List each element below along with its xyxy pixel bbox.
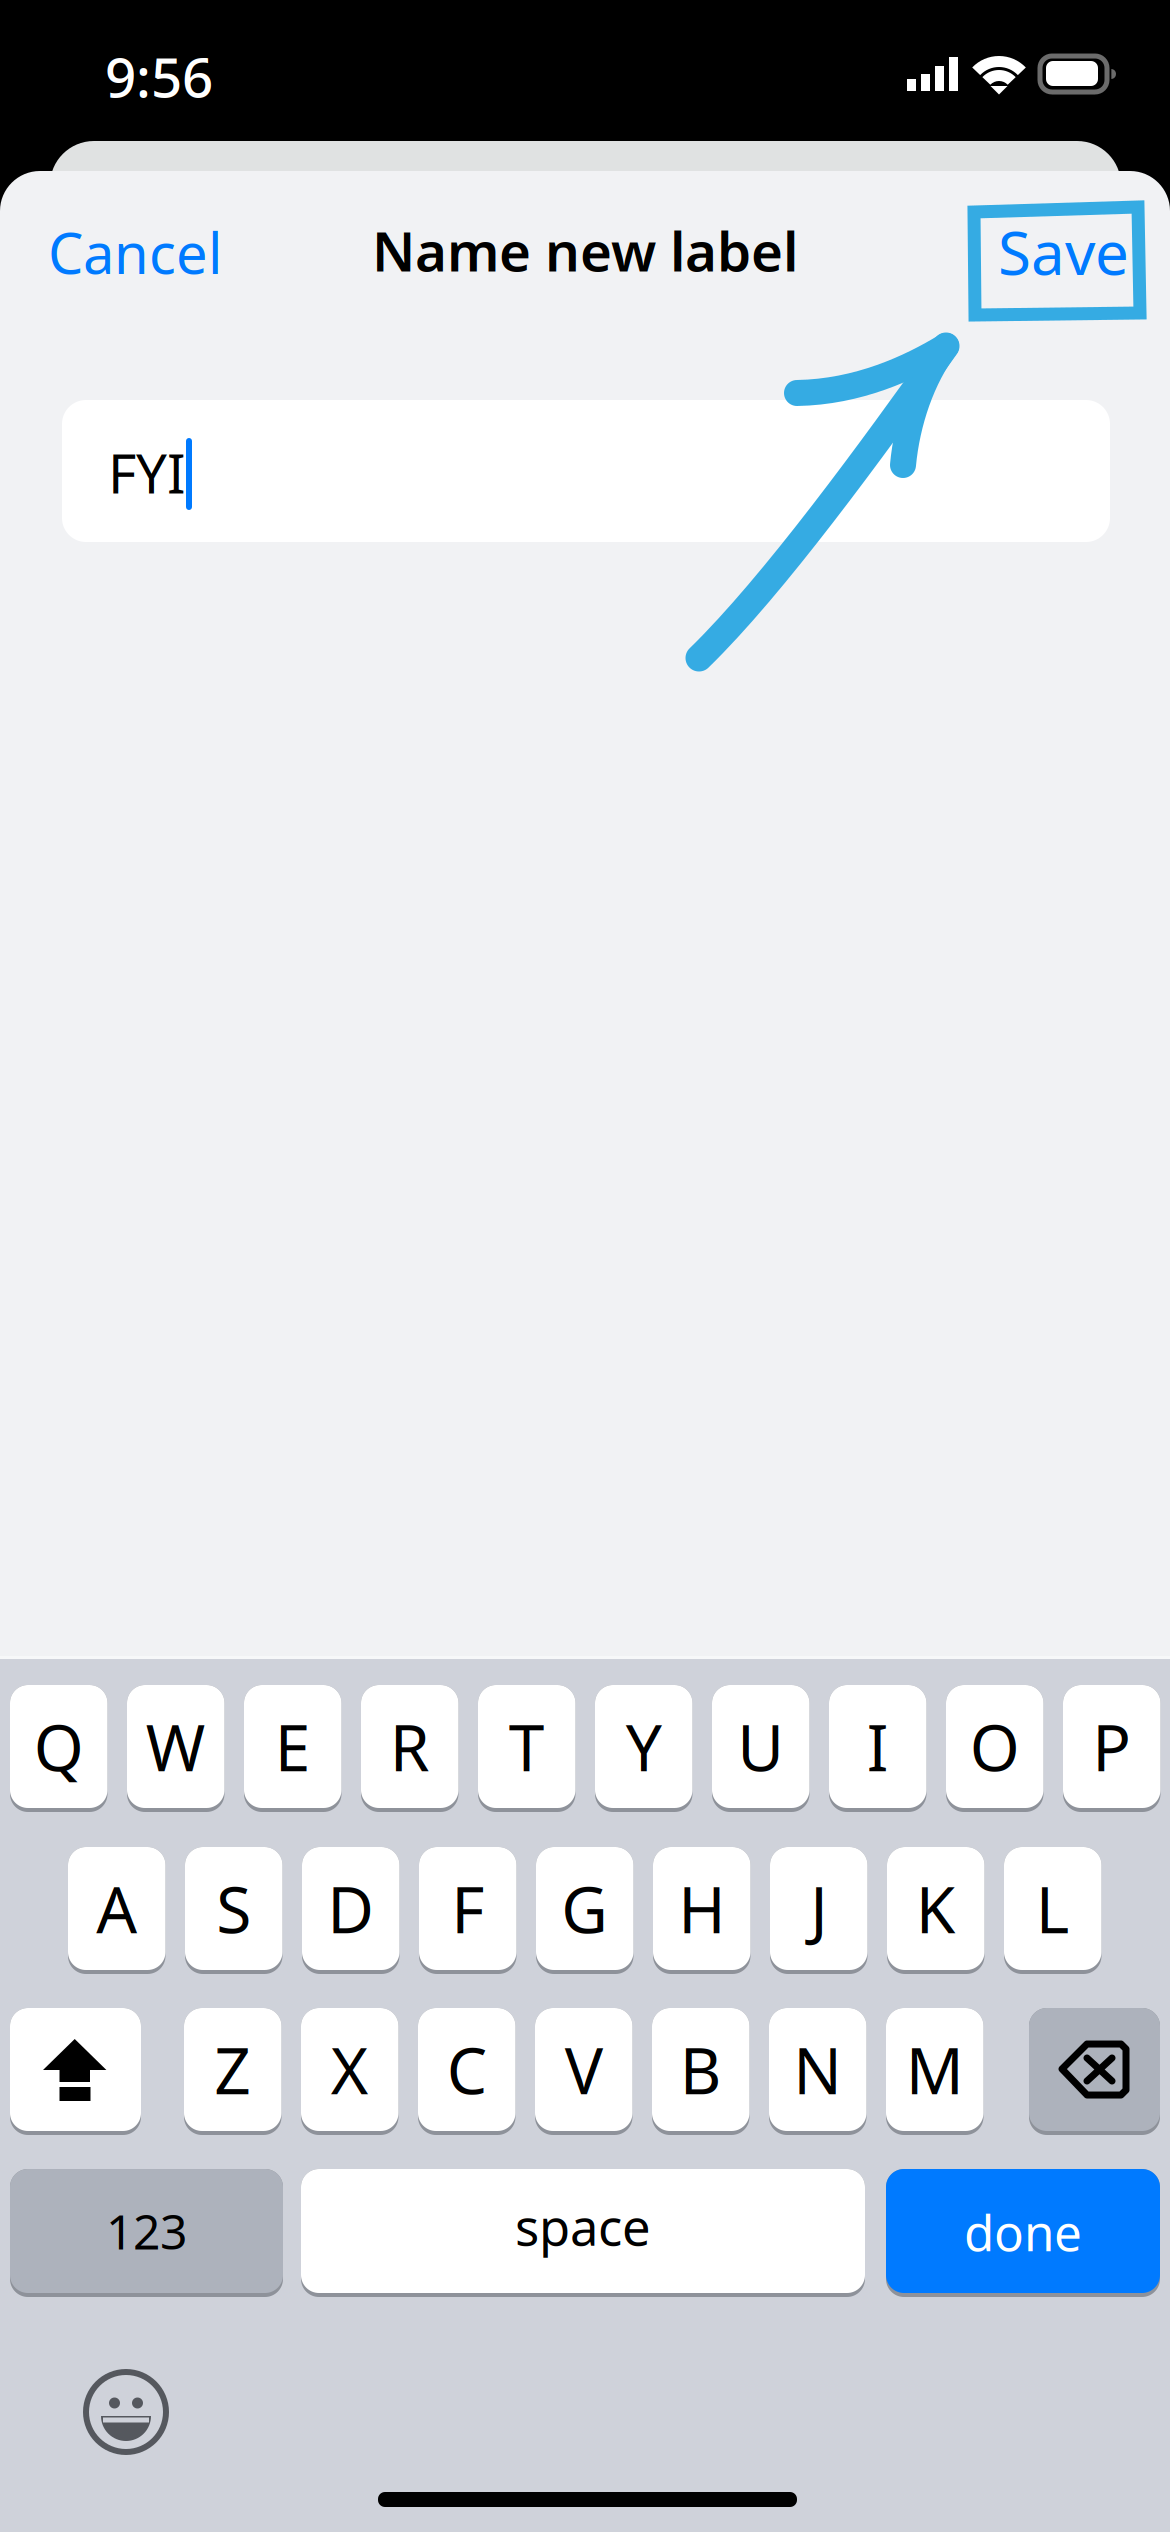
staticText: X	[331, 2027, 369, 2112]
staticText: T	[509, 1704, 545, 1789]
button[interactable]: E	[244, 1683, 341, 1810]
button[interactable]: F	[419, 1845, 516, 1972]
button[interactable]: W	[127, 1683, 224, 1810]
staticText: Save	[998, 212, 1129, 292]
staticText: 9:56	[105, 40, 213, 113]
button[interactable]: Q	[10, 1683, 107, 1810]
staticText: Y	[626, 1704, 662, 1789]
button[interactable]: S	[185, 1845, 282, 1972]
button[interactable]: C	[418, 2006, 515, 2133]
staticText: V	[565, 2027, 603, 2112]
staticText: E	[275, 1704, 311, 1789]
button[interactable]: A	[68, 1845, 165, 1972]
button[interactable]: M	[886, 2006, 983, 2133]
staticText: O	[970, 1704, 1020, 1789]
button[interactable]: Save	[982, 194, 1145, 310]
button[interactable]: space	[301, 2167, 865, 2295]
button[interactable]: Cancel	[32, 197, 238, 307]
staticText: C	[447, 2027, 487, 2112]
button[interactable]: Delete	[1029, 2006, 1160, 2133]
button[interactable]: Emoji keyboard	[86, 2372, 166, 2452]
button[interactable]: G	[536, 1845, 633, 1972]
staticText: H	[678, 1866, 725, 1951]
staticText: S	[216, 1866, 251, 1951]
button[interactable]: I	[829, 1683, 926, 1810]
staticText: Q	[34, 1704, 84, 1789]
button[interactable]: U	[712, 1683, 809, 1810]
staticText: D	[327, 1866, 374, 1951]
staticText: U	[737, 1704, 784, 1789]
staticText: Cancel	[48, 215, 222, 289]
button[interactable]: Z	[184, 2006, 281, 2133]
staticText: 123	[106, 2199, 187, 2263]
button[interactable]: J	[770, 1845, 867, 1972]
staticText: Name new label	[372, 214, 798, 287]
staticText: B	[680, 2027, 722, 2112]
button[interactable]: Y	[595, 1683, 692, 1810]
staticText: N	[793, 2027, 842, 2112]
staticText: space	[515, 2192, 651, 2260]
staticText: F	[451, 1866, 484, 1951]
button[interactable]: V	[535, 2006, 632, 2133]
staticText: J	[810, 1866, 827, 1951]
staticText: I	[867, 1704, 889, 1789]
staticText: L	[1036, 1866, 1070, 1951]
staticText: P	[1092, 1704, 1131, 1789]
button[interactable]: R	[361, 1683, 458, 1810]
button[interactable]: P	[1063, 1683, 1160, 1810]
button[interactable]: done	[886, 2167, 1160, 2295]
staticText: W	[146, 1704, 206, 1789]
staticText: FYI	[108, 436, 186, 509]
button[interactable]: O	[946, 1683, 1043, 1810]
button[interactable]: T	[478, 1683, 575, 1810]
staticText: Z	[214, 2027, 251, 2112]
staticText: done	[964, 2199, 1082, 2265]
button[interactable]: Shift	[10, 2006, 141, 2133]
button[interactable]: K	[887, 1845, 984, 1972]
button[interactable]: B	[652, 2006, 749, 2133]
button[interactable]: H	[653, 1845, 750, 1972]
staticText: A	[96, 1866, 137, 1951]
staticText: M	[906, 2027, 964, 2112]
button[interactable]: N	[769, 2006, 866, 2133]
button[interactable]: D	[302, 1845, 399, 1972]
button[interactable]: X	[301, 2006, 398, 2133]
button[interactable]: L	[1004, 1845, 1101, 1972]
staticText: K	[916, 1866, 956, 1951]
staticText: R	[390, 1704, 430, 1789]
staticText: G	[561, 1866, 608, 1951]
button[interactable]: 123	[10, 2167, 283, 2295]
